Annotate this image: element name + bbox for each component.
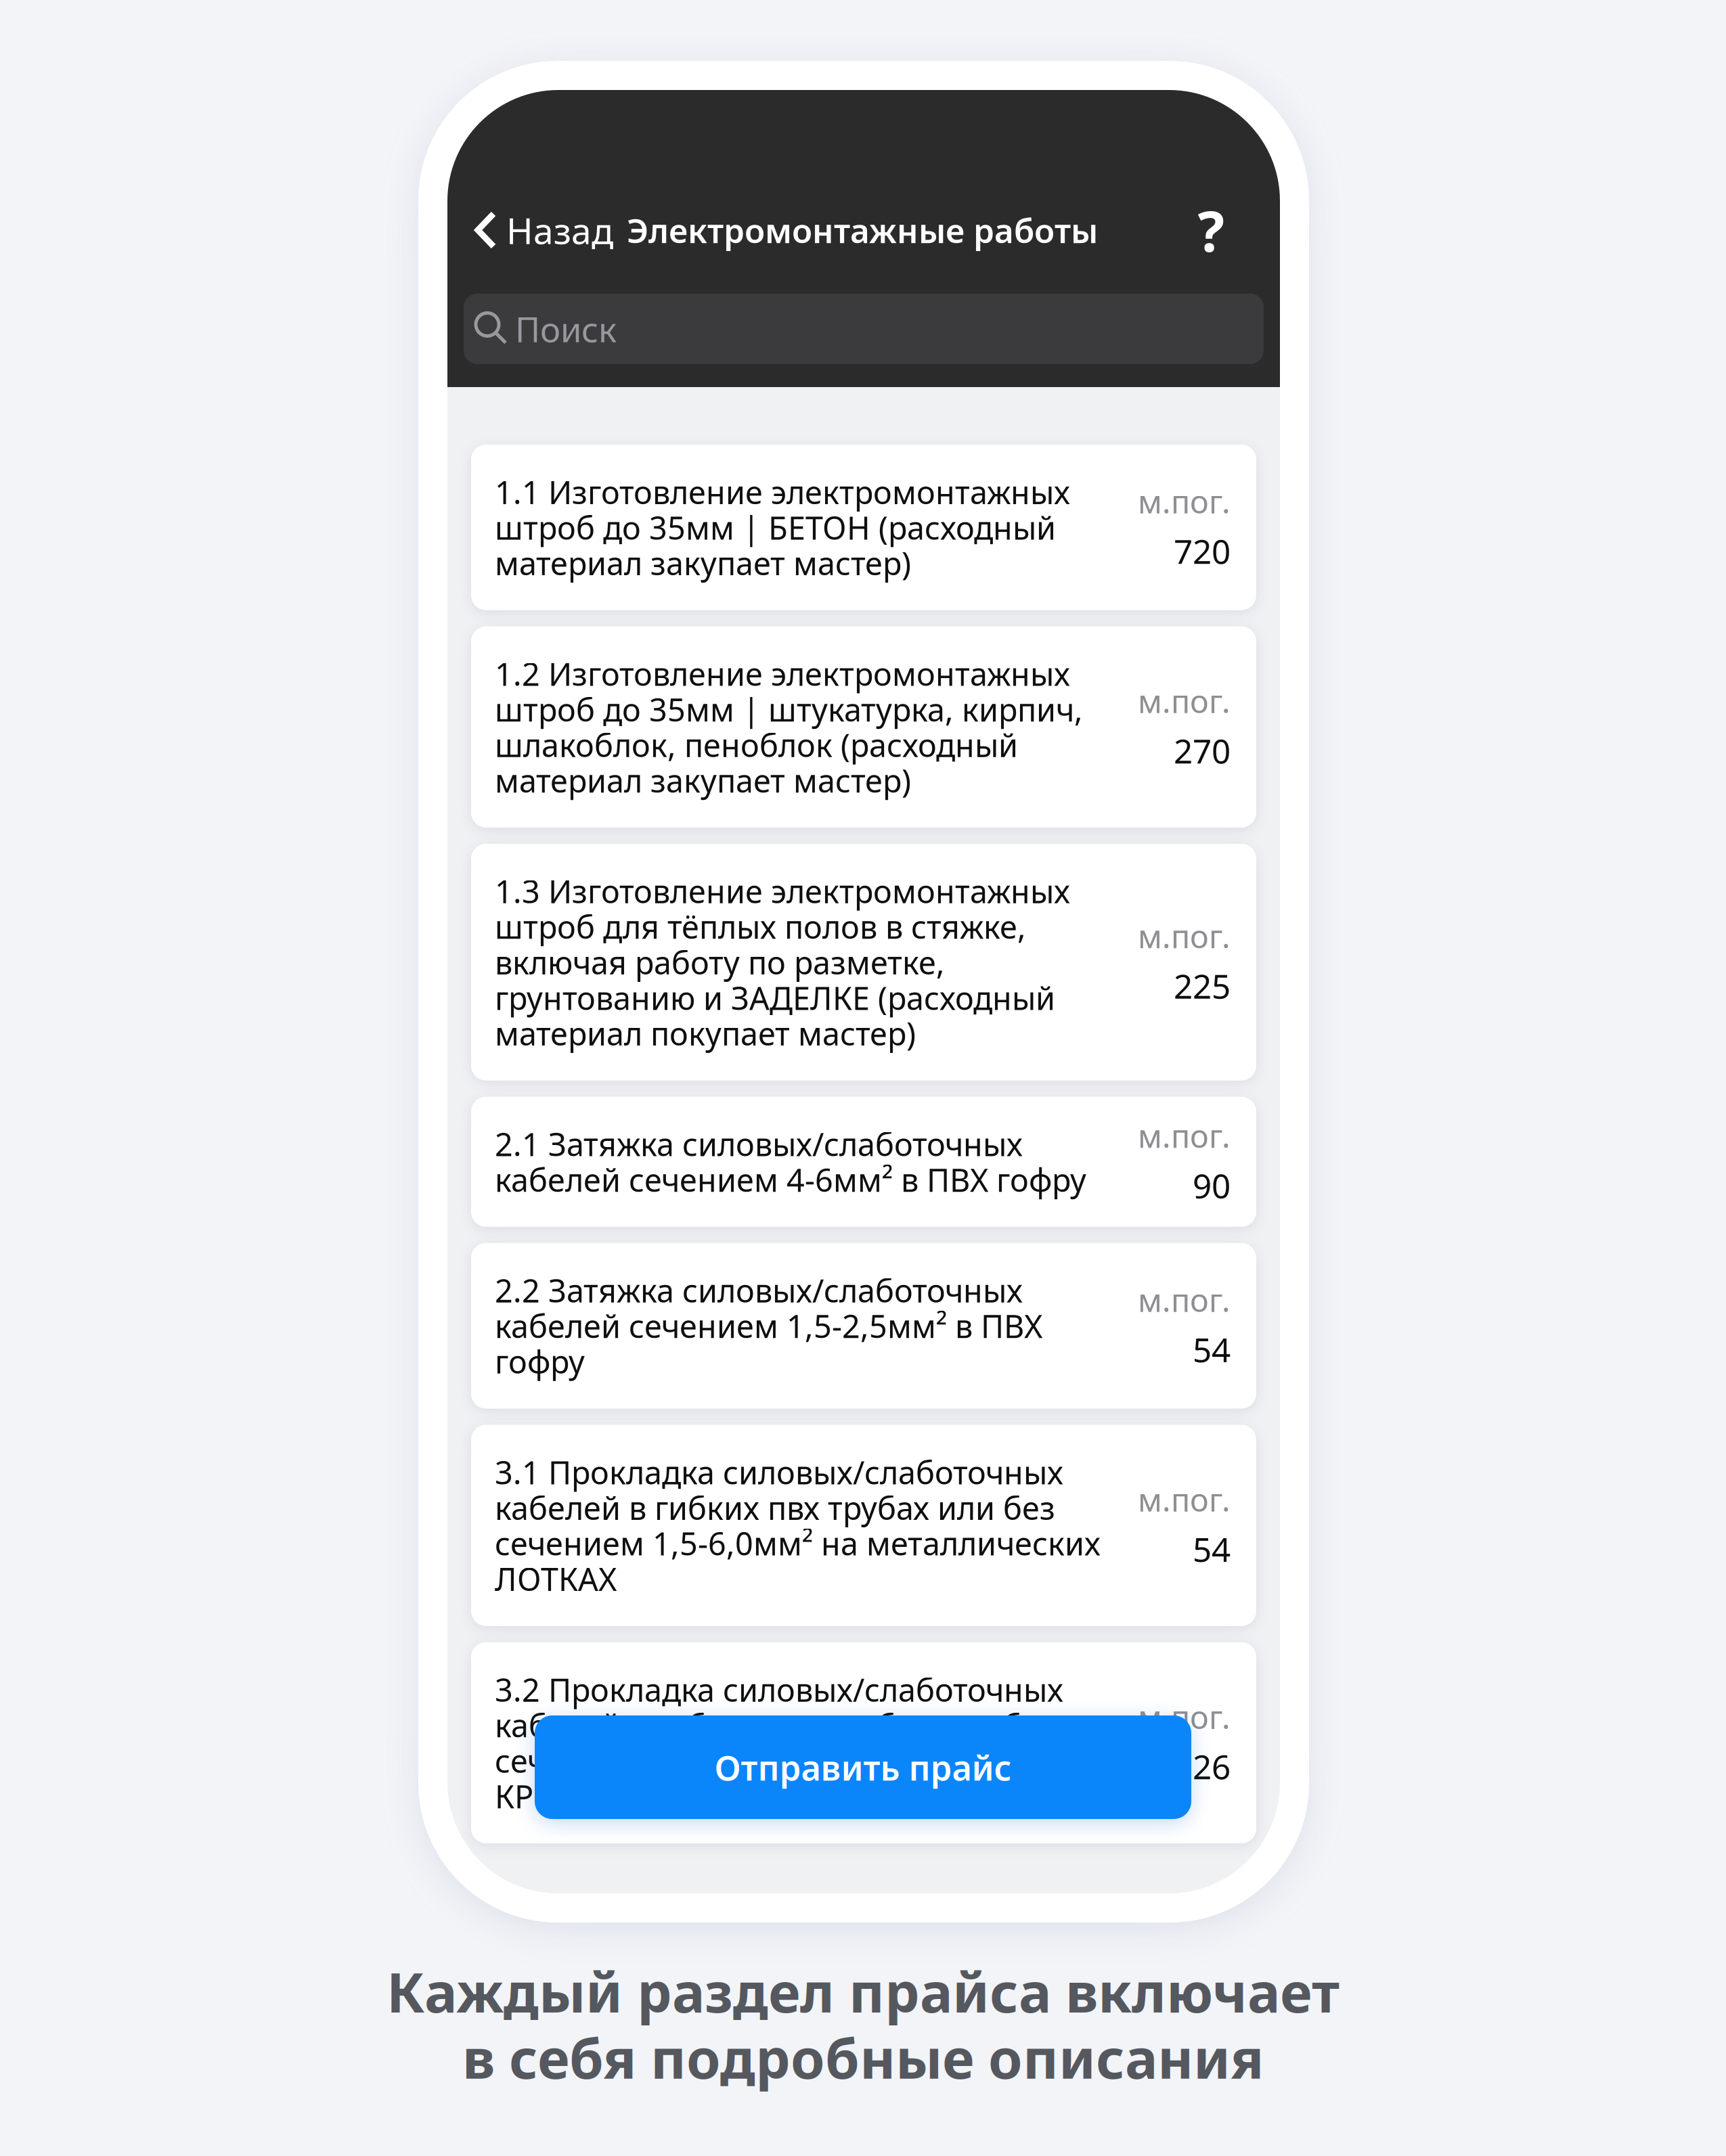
staticText: Назад <box>506 206 613 255</box>
staticText: м.пог. <box>1138 1478 1231 1521</box>
staticText: 3.2 Прокладка силовых/слаботочных кабеле… <box>495 1668 1063 1818</box>
staticText: 720 <box>1174 528 1231 574</box>
staticText: 54 <box>1193 1526 1231 1572</box>
staticText: 3.1 Прокладка силовых/слаботочных кабеле… <box>495 1451 1101 1600</box>
button[interactable]: 1.3 Изготовление электромонтажных штроб … <box>471 844 1256 1081</box>
staticText: 2.1 Затяжка силовых/слаботочных кабелей … <box>495 1122 1086 1201</box>
staticText: в себя подробные описания <box>462 2020 1264 2095</box>
staticText: 2.2 Затяжка силовых/слаботочных кабелей … <box>495 1269 1042 1383</box>
staticText: 1.2 Изготовление электромонтажных штроб … <box>495 652 1083 802</box>
button[interactable]: Назад <box>447 208 613 252</box>
button[interactable]: 1.1 Изготовление электромонтажных штроб … <box>471 445 1256 610</box>
staticText: 1.1 Изготовление электромонтажных штроб … <box>495 470 1070 584</box>
staticText: 90 <box>1193 1163 1231 1208</box>
button[interactable]: 1.2 Изготовление электромонтажных штроб … <box>471 626 1256 828</box>
staticText: м.пог. <box>1138 679 1231 722</box>
staticText: м.пог. <box>1138 915 1231 958</box>
staticText: Отправить прайс <box>714 1744 1012 1791</box>
staticText: 26 <box>1193 1744 1231 1789</box>
staticText: м.пог. <box>1138 480 1231 523</box>
button[interactable]: 3.1 Прокладка силовых/слаботочных кабеле… <box>471 1425 1256 1626</box>
button[interactable]: 3.2 Прокладка силовых/слаботочных кабеле… <box>471 1642 1256 1843</box>
staticText: 1.3 Изготовление электромонтажных штроб … <box>495 870 1070 1055</box>
button[interactable]: 2.1 Затяжка силовых/слаботочных кабелей … <box>471 1097 1256 1227</box>
staticText: м.пог. <box>1138 1114 1231 1157</box>
staticText: м.пог. <box>1138 1695 1231 1738</box>
button[interactable]: Help <box>1189 208 1233 252</box>
staticText: Поиск <box>515 306 617 352</box>
staticText: Каждый раздел прайса включает <box>386 1954 1340 2029</box>
staticText: 270 <box>1174 728 1231 773</box>
staticText: 225 <box>1174 963 1231 1008</box>
staticText: Электромонтажные работы <box>627 207 1098 253</box>
staticText: 54 <box>1193 1327 1231 1372</box>
staticText: м.пог. <box>1138 1278 1231 1321</box>
button[interactable]: Поиск <box>464 294 1264 364</box>
button[interactable]: Отправить прайс <box>535 1715 1191 1819</box>
button[interactable]: 2.2 Затяжка силовых/слаботочных кабелей … <box>471 1243 1256 1409</box>
staticText: ? <box>1198 192 1224 268</box>
